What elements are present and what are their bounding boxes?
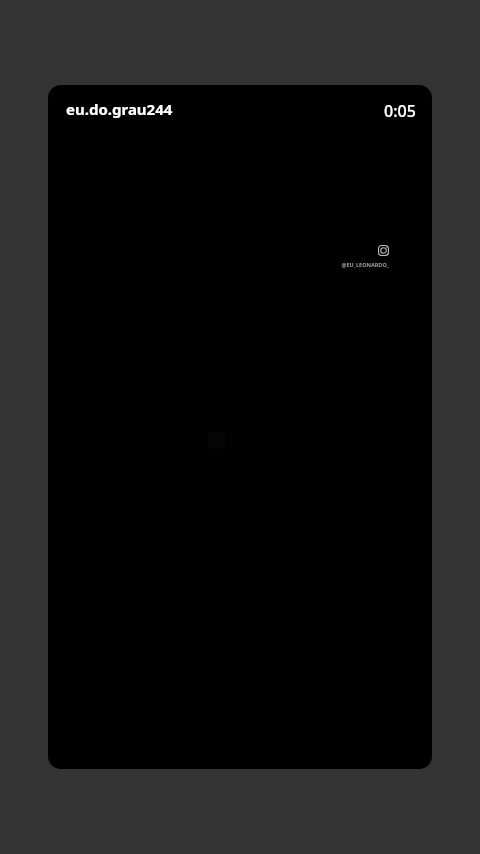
staticText: 0:05 [384, 100, 416, 122]
staticText: eu.do.grau244 [66, 99, 173, 119]
button[interactable]: Play or pause video [48, 85, 432, 769]
other: Instagram [378, 245, 389, 256]
staticText: @EU_LEONARDO_ [316, 261, 389, 268]
